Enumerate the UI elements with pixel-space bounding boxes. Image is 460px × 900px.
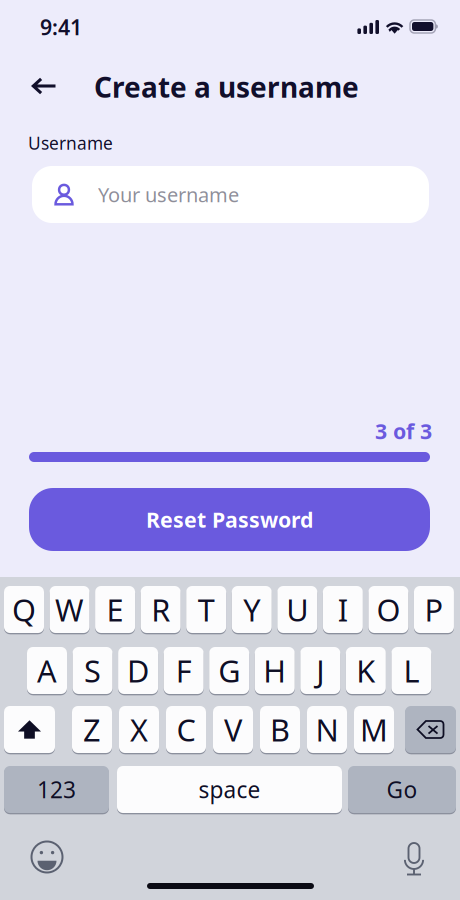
staticText: G [218,650,240,691]
staticText: S [84,650,101,691]
staticText: I [338,589,348,630]
button[interactable]: K [346,647,386,695]
staticText: E [107,589,124,630]
staticText: Y [243,589,260,630]
button[interactable]: A [27,647,67,695]
button[interactable]: H [255,647,295,695]
button[interactable]: B [260,706,300,754]
staticText: B [270,709,290,750]
staticText: D [127,650,149,691]
staticText: Z [83,709,101,750]
button[interactable]: C [166,706,206,754]
button[interactable]: Your username [32,166,429,223]
button[interactable]: P [414,586,454,634]
button[interactable]: F [164,647,204,695]
staticText: R [151,589,170,630]
button[interactable]: O [368,586,408,634]
staticText: O [376,589,400,630]
button[interactable]: L [391,647,431,695]
staticText: F [176,650,192,691]
staticText: Create a username [94,68,359,106]
button[interactable]: R [141,586,181,634]
button[interactable]: V [213,706,253,754]
staticText: V [224,709,242,750]
staticText: Reset Password [146,505,313,534]
staticText: M [360,709,388,750]
staticText: T [198,589,215,630]
staticText: space [198,774,260,804]
staticText: Your username [98,181,239,208]
button[interactable]: N [307,706,347,754]
button[interactable]: Back [22,64,66,108]
staticText: C [176,709,195,750]
staticText: K [356,650,375,691]
button[interactable]: Delete [405,706,456,754]
button[interactable]: S [72,647,112,695]
staticText: J [316,650,324,691]
staticText: Username [28,131,113,154]
button[interactable]: I [323,586,363,634]
button[interactable]: space [117,766,342,814]
button[interactable]: Y [232,586,272,634]
button[interactable]: W [49,586,89,634]
button[interactable]: Dictate [392,835,436,879]
button[interactable]: M [354,706,394,754]
button[interactable]: Q [4,586,44,634]
staticText: N [315,709,338,750]
staticText: Q [12,589,36,630]
staticText: 123 [37,774,76,804]
staticText: 9:41 [40,13,82,41]
staticText: 3 of 3 [375,417,432,445]
staticText: H [263,650,286,691]
staticText: Go [386,774,417,804]
staticText: P [424,589,443,630]
button[interactable]: Shift [4,706,55,754]
button[interactable]: Emoji [25,835,69,879]
staticText: L [403,650,419,691]
button[interactable]: Go [348,766,456,814]
button[interactable]: Reset Password [29,488,430,551]
staticText: X [130,709,148,750]
button[interactable]: T [186,586,226,634]
staticText: U [286,589,308,630]
staticText: W [55,589,84,630]
button[interactable]: Z [72,706,112,754]
button[interactable]: J [300,647,340,695]
button[interactable]: G [209,647,249,695]
staticText: A [37,650,57,691]
button[interactable]: E [95,586,135,634]
button[interactable]: 123 [4,766,109,814]
button[interactable]: U [277,586,317,634]
button[interactable]: D [118,647,158,695]
button[interactable]: X [119,706,159,754]
